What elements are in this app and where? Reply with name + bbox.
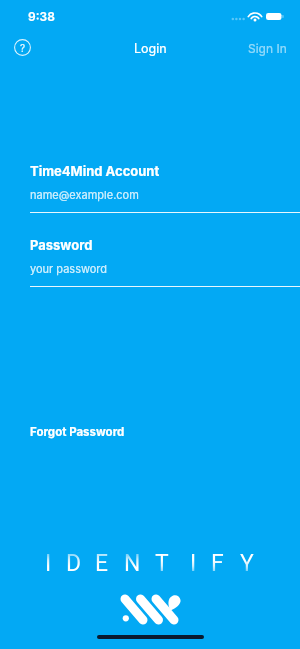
button[interactable]: Forgot Password (30, 425, 125, 439)
staticText: Login (134, 41, 167, 56)
staticText: D (66, 550, 82, 577)
staticText: 9:38 (28, 9, 55, 24)
button[interactable]: Sign In (248, 41, 300, 56)
staticText: E (95, 550, 109, 577)
staticText: Sign In (248, 41, 287, 56)
staticText: Password (30, 237, 93, 253)
staticText: name@example.com (30, 188, 139, 201)
staticText: Y (240, 550, 254, 577)
staticText: ? (20, 42, 26, 54)
staticText: F (211, 550, 224, 577)
staticText: N (124, 550, 141, 577)
staticText: your password (30, 262, 108, 275)
staticText: T (155, 550, 169, 577)
staticText: I (190, 550, 197, 577)
staticText: Time4Mind Account (30, 163, 160, 179)
staticText: I (45, 550, 52, 577)
staticText: Forgot Password (30, 425, 125, 439)
button[interactable]: Help (10, 35, 35, 60)
